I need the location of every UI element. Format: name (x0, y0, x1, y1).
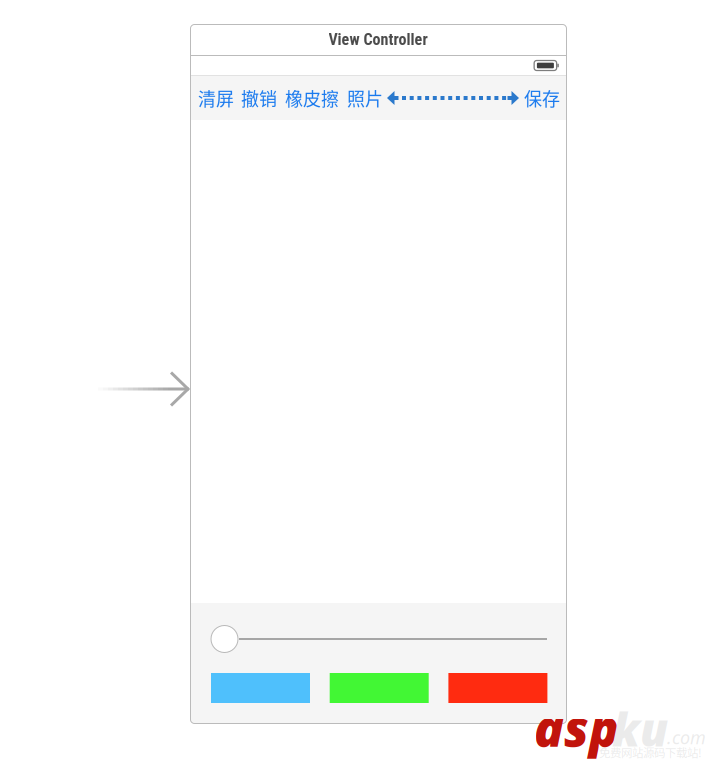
button[interactable]: 撤销 (241, 85, 277, 111)
button[interactable]: 保存 (524, 85, 560, 111)
staticText: 保存 (524, 85, 560, 111)
staticText: 橡皮擦 (285, 85, 339, 111)
button[interactable]: 清屏 (198, 85, 234, 111)
button[interactable]: 照片 (347, 85, 383, 111)
staticText: View Controller (328, 30, 427, 49)
staticText: 撤销 (241, 85, 277, 111)
button[interactable]: Red (448, 673, 547, 703)
staticText: 免费网站源码下载站! (599, 744, 702, 761)
staticText: ku (612, 698, 668, 760)
button[interactable]: 橡皮擦 (285, 85, 339, 111)
staticText: asp (534, 694, 619, 761)
staticText: .com (667, 725, 706, 749)
staticText: 照片 (347, 85, 383, 111)
button[interactable]: Flexible space (387, 90, 519, 106)
staticText: 清屏 (198, 85, 234, 111)
button[interactable]: Green (330, 673, 429, 703)
